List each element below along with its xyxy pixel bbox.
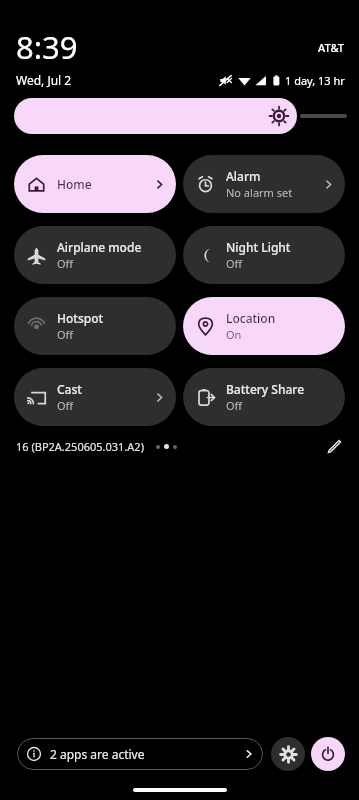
staticText: 16 (BP2A.250605.031.A2) (16, 439, 144, 454)
staticText: 8:39 (16, 26, 78, 68)
staticText: Off (57, 398, 74, 413)
staticText: On (226, 327, 242, 342)
staticText: Cast (57, 381, 82, 397)
staticText: Off (57, 327, 74, 342)
button[interactable]: Hotspot (14, 297, 176, 355)
staticText: Off (226, 398, 243, 413)
staticText: 2 apps are active (50, 746, 145, 762)
staticText: Location (226, 310, 276, 326)
button[interactable]: Airplane mode (14, 226, 176, 284)
staticText: Airplane mode (57, 239, 142, 255)
staticText: Battery Share (226, 381, 305, 397)
button[interactable]: Settings (271, 737, 305, 771)
staticText: AT&T (318, 40, 345, 55)
button[interactable]: Alarm (183, 155, 345, 213)
button[interactable]: Brightness (14, 98, 345, 134)
button[interactable]: Power (311, 737, 345, 771)
staticText: 1 day, 13 hr (285, 73, 345, 88)
staticText: Home (57, 176, 92, 192)
button[interactable]: Night Light (183, 226, 345, 284)
staticText: Wed, Jul 2 (16, 72, 72, 88)
button[interactable]: 2 apps are active (17, 738, 263, 770)
staticText: Night Light (226, 239, 291, 255)
button[interactable]: Battery Share (183, 368, 345, 426)
button[interactable]: Location (183, 297, 345, 355)
button[interactable]: Cast (14, 368, 176, 426)
staticText: No alarm set (226, 185, 293, 200)
button[interactable]: Home (14, 155, 176, 213)
staticText: Off (57, 256, 74, 271)
staticText: Alarm (226, 168, 261, 184)
button[interactable]: Edit tiles (323, 435, 345, 457)
staticText: Off (226, 256, 243, 271)
staticText: Hotspot (57, 310, 104, 326)
